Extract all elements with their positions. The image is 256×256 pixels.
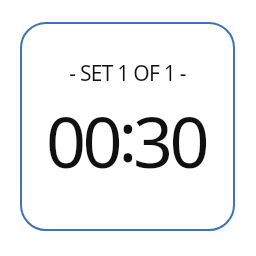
button[interactable]: - SET 1 OF 1 -	[20, 22, 235, 231]
staticText: :	[118, 87, 134, 182]
staticText: 30	[133, 93, 206, 188]
staticText: - SET 1 OF 1 -	[69, 59, 186, 88]
staticText: 00	[46, 93, 119, 188]
